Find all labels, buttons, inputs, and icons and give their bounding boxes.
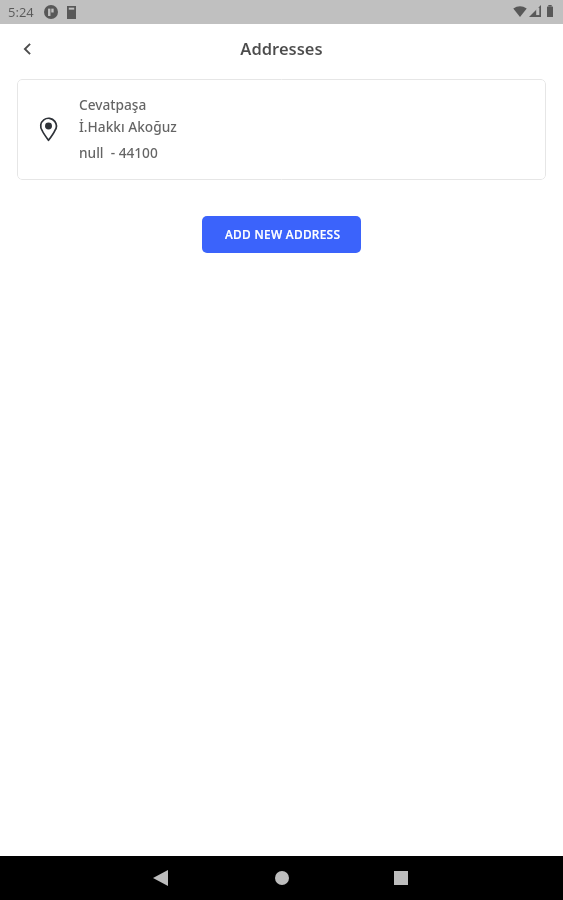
staticText: Cevatpaşa	[79, 95, 147, 114]
button[interactable]: Recent apps	[377, 856, 425, 900]
staticText: Addresses	[240, 37, 323, 59]
button[interactable]: Back	[136, 856, 184, 900]
staticText: 5:24	[8, 3, 34, 21]
button[interactable]: Back	[7, 29, 47, 69]
button[interactable]: Home	[258, 856, 306, 900]
staticText: null - 44100	[79, 143, 158, 162]
staticText: İ.Hakkı Akoğuz	[79, 117, 177, 136]
button[interactable]: Cevatpaşa	[17, 79, 546, 180]
staticText: ADD NEW ADDRESS	[225, 226, 341, 242]
button[interactable]: ADD NEW ADDRESS	[202, 216, 361, 253]
